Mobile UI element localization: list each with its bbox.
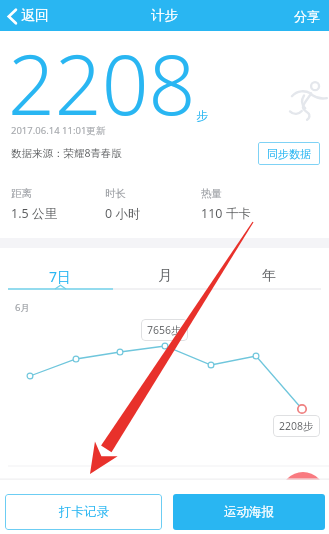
staticText: 时长 [105, 187, 126, 200]
staticText: 0 小时 [105, 205, 141, 222]
staticText: 距离 [11, 187, 32, 200]
staticText: 运动海报 [224, 504, 274, 520]
staticText: 年 [262, 267, 276, 285]
staticText: 110 千卡 [201, 205, 251, 222]
button[interactable]: 运动海报 [173, 494, 325, 530]
staticText: 数据来源：荣耀8青春版 [11, 146, 123, 160]
staticText: 分享 [294, 8, 320, 24]
button[interactable]: 返回 [0, 2, 57, 30]
staticText: 打卡记录 [59, 504, 109, 520]
button[interactable]: 7日 [8, 250, 113, 290]
button[interactable]: 年 [217, 250, 321, 290]
button[interactable]: Add record [281, 472, 325, 480]
staticText: 6月 [15, 301, 30, 314]
staticText: 7656步 [147, 323, 182, 337]
other: Running [290, 81, 328, 119]
button[interactable]: 月 [113, 250, 217, 290]
staticText: 热量 [201, 187, 222, 200]
staticText: 计步 [151, 7, 178, 24]
staticText: 返回 [21, 7, 49, 25]
button[interactable]: 打卡记录 [5, 494, 162, 530]
button[interactable]: 分享 [285, 3, 329, 29]
staticText: 2208步 [279, 419, 314, 433]
staticText: 同步数据 [267, 147, 311, 161]
button[interactable]: 同步数据 [258, 142, 320, 165]
staticText: 7日 [49, 267, 72, 286]
staticText: 1.5 公里 [11, 205, 57, 222]
staticText: 2017.06.14 11:01更新 [11, 124, 106, 137]
staticText: 步 [196, 108, 208, 123]
staticText: 2208 [8, 27, 196, 139]
staticText: 月 [158, 267, 172, 285]
